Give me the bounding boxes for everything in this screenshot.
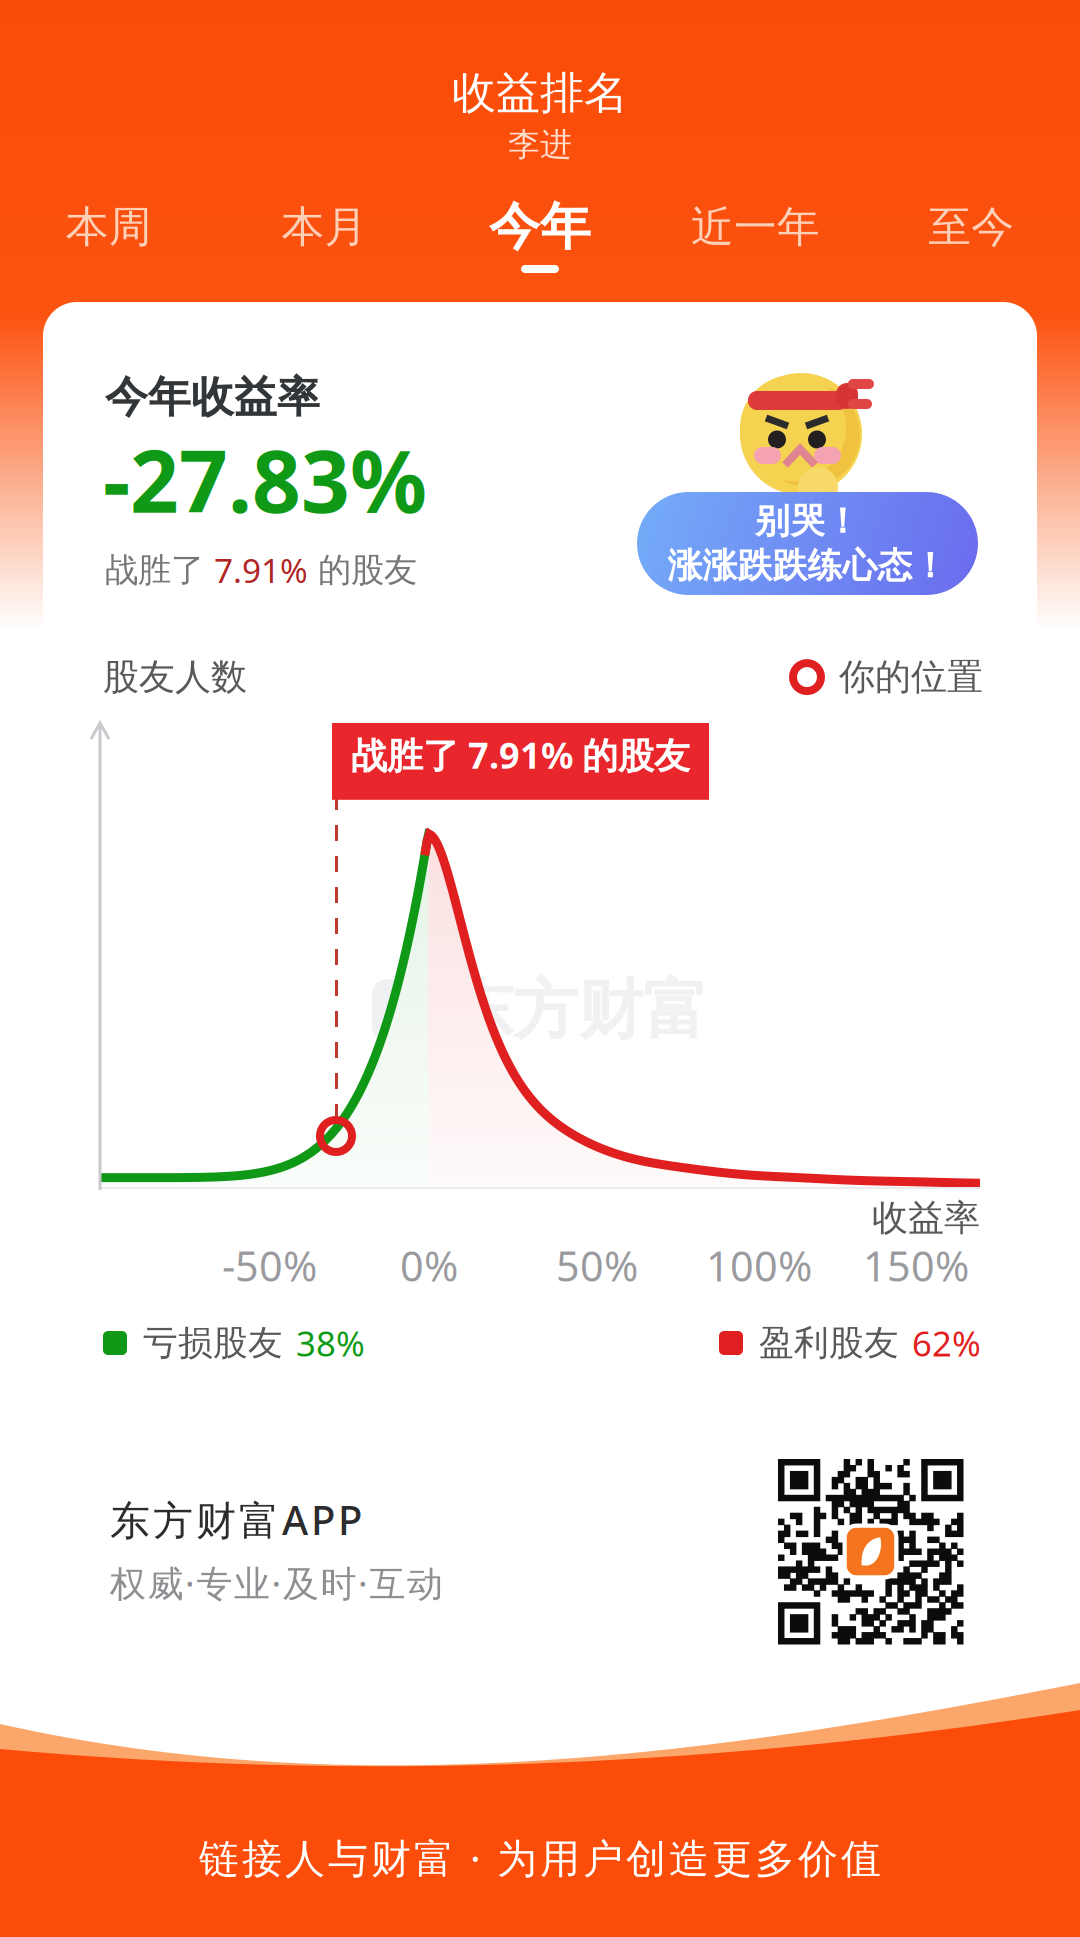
staticText: 别哭！ [755,500,860,542]
staticText: -27.83% [103,423,427,536]
staticText: 本月 [281,201,367,253]
staticText: 权威·专业·及时·互动 [110,1559,443,1607]
staticText: 50% [556,1238,638,1293]
staticText: 38% [296,1320,365,1366]
button[interactable]: 至今 [863,198,1079,273]
staticText: 近一年 [691,201,820,253]
staticText: 东方财富 [448,970,708,1050]
staticText: -50% [222,1238,317,1293]
button[interactable]: 本周 [1,198,217,273]
staticText: 本周 [66,201,152,253]
staticText: 你的位置 [839,655,983,699]
staticText: 股友人数 [103,655,247,699]
staticText: 100% [706,1238,812,1293]
staticText: 亏损股友 [143,1322,283,1364]
staticText: 7.91% [214,548,308,592]
staticText: 链接人与财富 · 为用户创造更多价值 [199,1831,881,1884]
staticText: 盈利股友 [759,1322,899,1364]
staticText: 的股友 [308,550,417,591]
button[interactable]: 今年 [432,198,648,273]
staticText: 战胜了 7.91% 的股友 [351,731,690,779]
staticText: 62% [912,1320,981,1366]
staticText: 东方财富APP [110,1493,362,1546]
staticText: 收益率 [872,1196,980,1240]
staticText: 今年 [489,196,591,258]
staticText: 0% [400,1238,458,1293]
staticText: 150% [863,1238,969,1293]
staticText: 收益排名 [452,66,628,120]
button[interactable]: 本月 [217,198,432,273]
staticText: 战胜了 [105,550,214,591]
button[interactable]: 近一年 [648,198,863,273]
staticText: 今年收益率 [105,371,320,423]
staticText: 至今 [928,201,1014,253]
staticText: 涨涨跌跌练心态！ [667,544,947,587]
staticText: 李进 [508,125,572,164]
